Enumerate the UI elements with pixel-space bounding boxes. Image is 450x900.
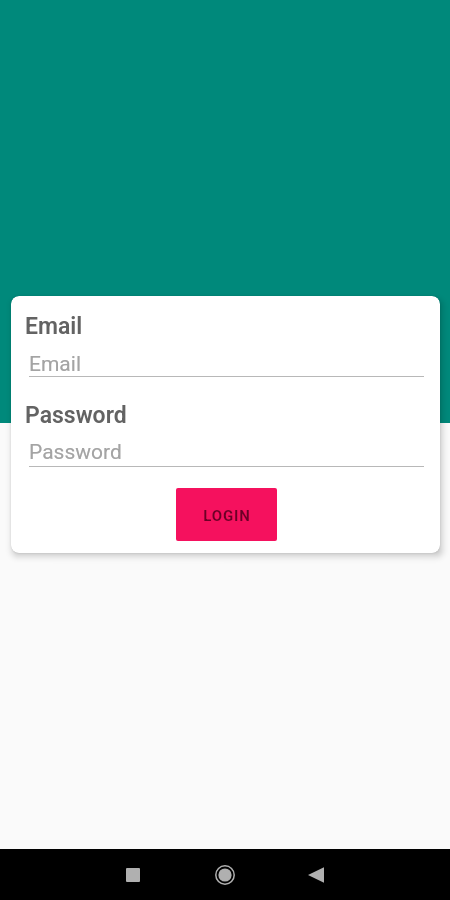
staticText: LOGIN <box>203 507 251 525</box>
staticText: Email <box>25 313 83 340</box>
staticText: Password <box>25 402 127 429</box>
button[interactable]: Back <box>271 849 363 900</box>
staticText: Password <box>29 440 122 465</box>
staticText: Email <box>29 352 81 377</box>
button[interactable]: Password input field <box>29 431 423 465</box>
button[interactable]: Home <box>179 849 271 900</box>
button[interactable]: Email input field <box>29 343 423 377</box>
button[interactable]: LOGIN <box>176 488 277 541</box>
button[interactable]: Recent apps <box>87 849 179 900</box>
